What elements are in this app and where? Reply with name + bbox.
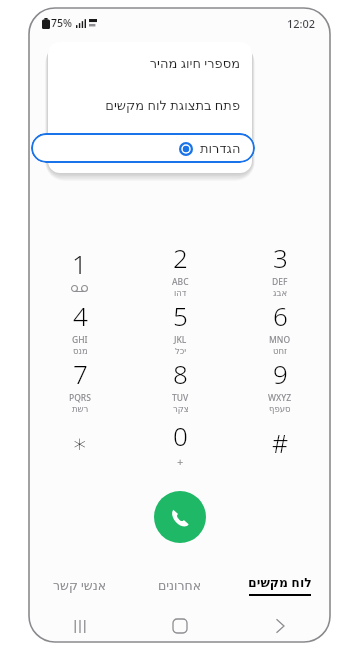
staticText: TUV [172, 392, 189, 404]
staticText: MNO [269, 334, 291, 346]
staticText: דהו [174, 288, 187, 298]
staticText: רשת [72, 404, 89, 414]
button[interactable]: הגדרות [31, 133, 255, 163]
staticText: יכל [175, 346, 187, 356]
staticText: אחרונים [158, 578, 202, 593]
button[interactable]: 6 [230, 298, 330, 356]
staticText: 7 [73, 356, 88, 391]
staticText: ABC [172, 276, 189, 288]
button[interactable]: 2 [130, 240, 230, 298]
staticText: אנשי קשר [53, 577, 107, 594]
staticText: + [177, 454, 184, 469]
button[interactable]: # [230, 414, 330, 472]
staticText: אבג [273, 288, 288, 298]
button[interactable]: 7 [29, 356, 130, 414]
staticText: סעפף [269, 404, 291, 414]
staticText: 3 [273, 240, 288, 275]
staticText: 6 [273, 298, 288, 333]
button[interactable]: 3 [230, 240, 330, 298]
button[interactable]: Call [154, 491, 206, 543]
button[interactable]: מספרי חיוג מהיר [48, 42, 252, 84]
button[interactable]: Recents [29, 610, 130, 642]
staticText: ∗ [72, 429, 88, 458]
button[interactable]: 9 [230, 356, 330, 414]
staticText: 9 [273, 356, 288, 391]
button[interactable]: Back [230, 610, 330, 642]
staticText: זחט [273, 346, 288, 356]
staticText: 0 [173, 418, 188, 453]
staticText: # [272, 426, 289, 460]
staticText: 12:02 [287, 16, 316, 31]
button[interactable]: 5 [130, 298, 230, 356]
staticText: פתח בתצוגת לוח מקשים [105, 96, 240, 114]
staticText: 2 [173, 240, 188, 275]
staticText: GHI [72, 334, 88, 346]
button[interactable]: אנשי קשר [29, 568, 130, 602]
staticText: DEF [272, 276, 288, 288]
button[interactable]: ∗ [29, 414, 130, 472]
button[interactable]: לוח מקשים [230, 568, 330, 602]
staticText: מספרי חיוג מהיר [149, 54, 240, 72]
staticText: מנס [73, 346, 88, 356]
staticText: צקר [173, 404, 189, 414]
button[interactable]: אחרונים [130, 568, 230, 602]
staticText: PQRS [69, 392, 91, 404]
staticText: WXYZ [268, 392, 292, 404]
button[interactable]: 8 [130, 356, 230, 414]
staticText: 8 [173, 356, 188, 391]
button[interactable]: 4 [29, 298, 130, 356]
staticText: 75% [51, 16, 72, 30]
staticText: 4 [73, 298, 88, 333]
staticText: הגדרות [200, 141, 241, 156]
button[interactable]: 1 [29, 240, 130, 298]
button[interactable]: פתח בתצוגת לוח מקשים [48, 84, 252, 126]
button[interactable]: 0 [130, 414, 230, 472]
staticText: 1 [72, 246, 87, 281]
staticText: JKL [174, 334, 187, 346]
button[interactable]: Home [130, 610, 230, 642]
staticText: 5 [173, 298, 188, 333]
staticText: לוח מקשים [248, 574, 312, 591]
